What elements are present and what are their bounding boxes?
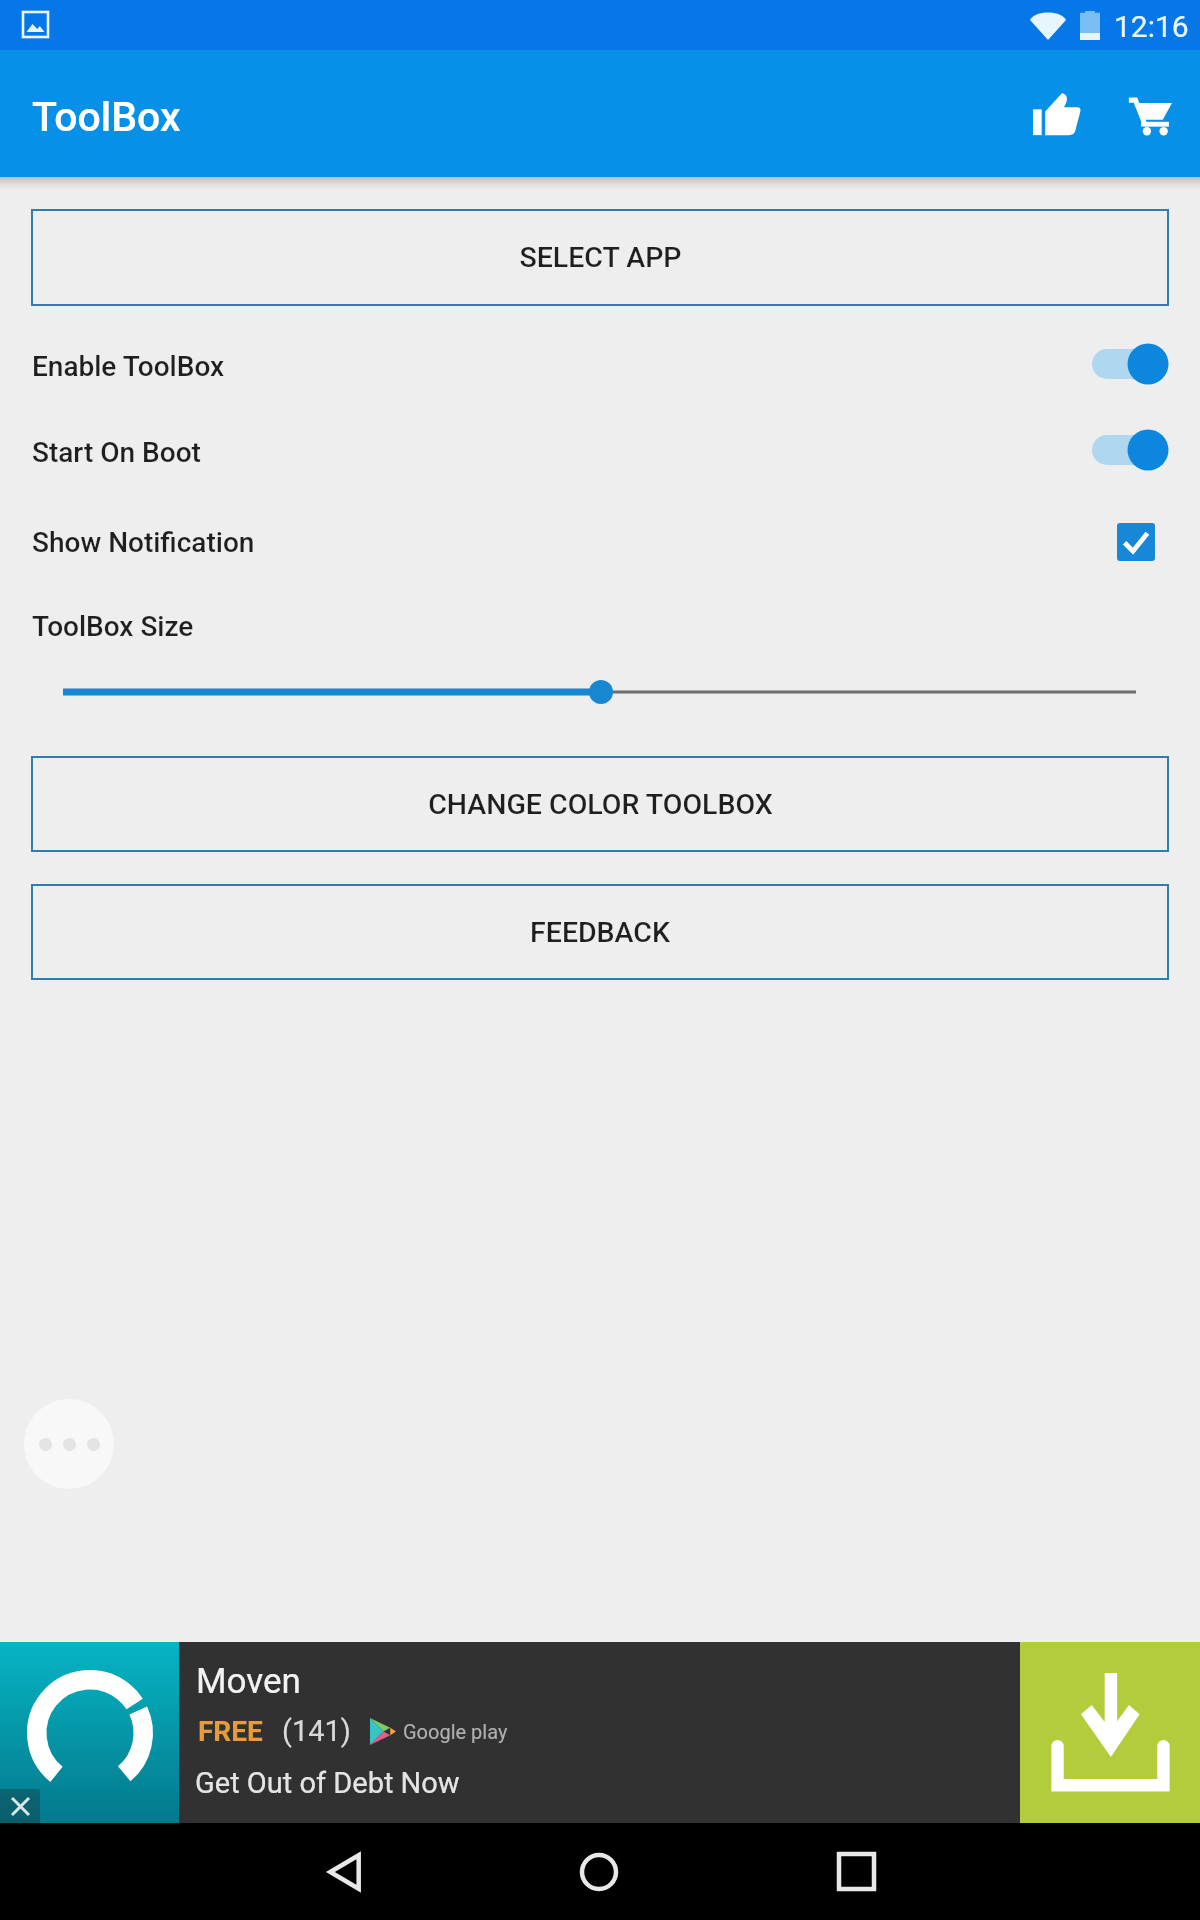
button[interactable]: Show Notification <box>0 499 1200 585</box>
staticText: CHANGE COLOR TOOLBOX <box>428 788 773 821</box>
button[interactable]: Back <box>299 1823 389 1920</box>
button[interactable]: Install <box>1020 1642 1200 1823</box>
button[interactable]: FEEDBACK <box>32 885 1168 979</box>
staticText: Get Out of Debt Now <box>195 1766 460 1800</box>
staticText: Enable ToolBox <box>32 350 225 383</box>
staticText: 12:16 <box>1114 9 1189 44</box>
staticText: ToolBox Size <box>32 610 194 643</box>
button[interactable]: Close ad <box>0 1789 40 1823</box>
button[interactable]: Shopping cart <box>1102 66 1198 162</box>
button[interactable]: Close ad <box>0 1642 1200 1823</box>
staticText: FEEDBACK <box>530 916 670 949</box>
button[interactable]: Enable ToolBox <box>0 323 1200 409</box>
button[interactable]: ToolBox size slider <box>0 662 1200 722</box>
button[interactable]: Rate this app <box>1008 66 1104 162</box>
button[interactable]: SELECT APP <box>32 210 1168 305</box>
button[interactable]: Start On Boot <box>0 409 1200 495</box>
button[interactable]: More options <box>24 1399 114 1489</box>
staticText: Google play <box>403 1720 508 1743</box>
staticText: (141) <box>282 1714 351 1748</box>
staticText: Moven <box>196 1661 301 1702</box>
button[interactable]: Recent apps <box>811 1823 901 1920</box>
staticText: FREE <box>198 1715 263 1748</box>
staticText: ToolBox <box>32 93 181 141</box>
button[interactable]: CHANGE COLOR TOOLBOX <box>32 757 1168 851</box>
button[interactable]: Home <box>554 1823 644 1920</box>
staticText: Show Notification <box>32 526 255 559</box>
staticText: Start On Boot <box>32 436 201 469</box>
staticText: SELECT APP <box>519 241 682 274</box>
